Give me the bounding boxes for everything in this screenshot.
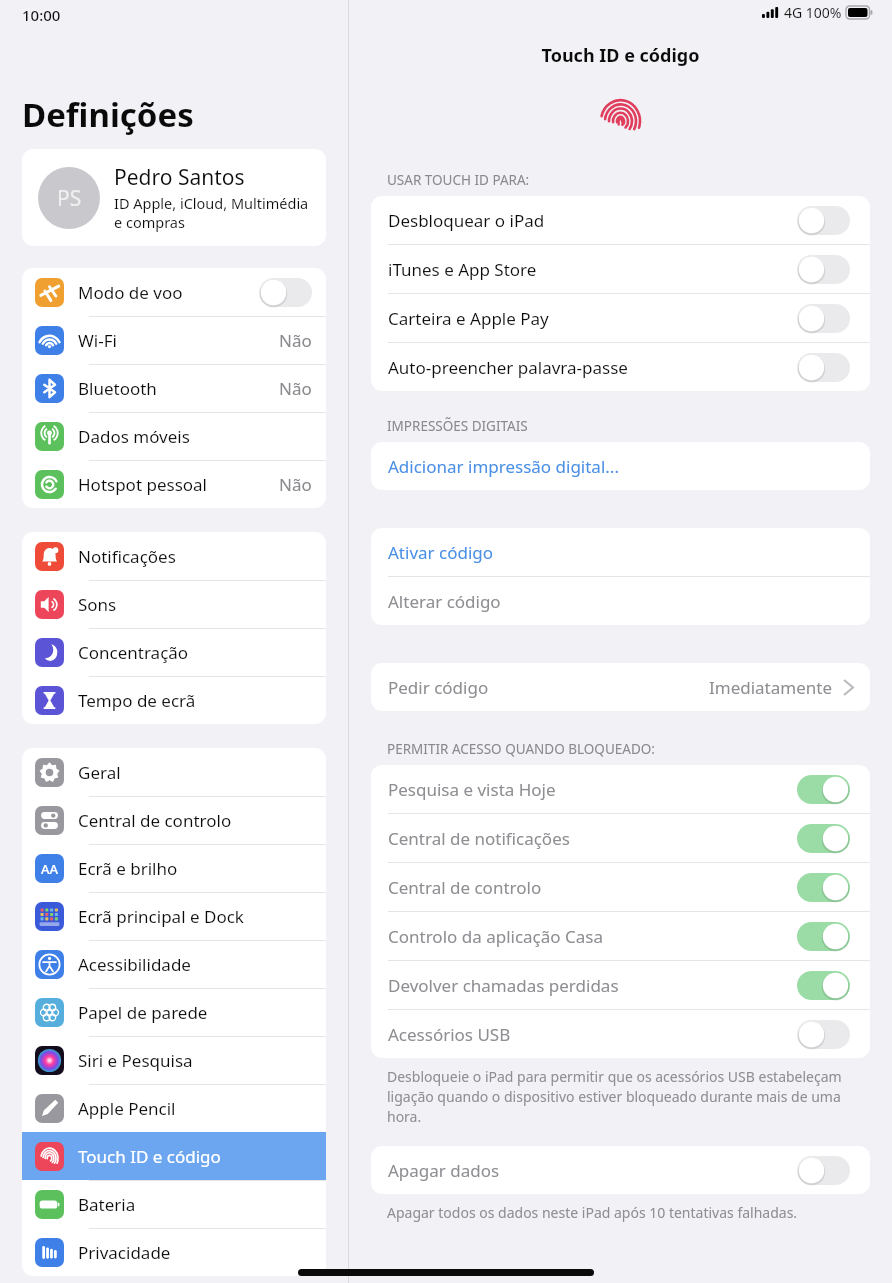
button[interactable]: Ativado <box>797 873 850 902</box>
staticText: IMPRESSÕES DIGITAIS <box>387 417 528 435</box>
button[interactable]: Pesquisa e vista Hoje <box>371 765 870 813</box>
button[interactable]: Bateria <box>22 1180 326 1228</box>
button[interactable]: Ativado <box>797 775 850 804</box>
staticText: Hotspot pessoal <box>78 473 279 496</box>
staticText: Siri e Pesquisa <box>78 1049 312 1072</box>
button[interactable]: Desbloquear o iPad <box>371 196 870 244</box>
button[interactable]: Desativado <box>797 1020 850 1049</box>
button[interactable]: iTunes e App Store <box>371 245 870 293</box>
button[interactable]: PS <box>22 149 326 246</box>
staticText: Modo de voo <box>78 281 259 304</box>
button[interactable]: Ativar código <box>371 528 870 576</box>
staticText: ID Apple, iCloud, Multimédia e compras <box>114 193 309 232</box>
staticText: Não <box>279 377 312 400</box>
button[interactable]: Acessórios USB <box>371 1010 870 1058</box>
staticText: Controlo da aplicação Casa <box>388 925 797 948</box>
staticText: Imediatamente <box>709 676 833 699</box>
staticText: Acessórios USB <box>388 1023 797 1046</box>
staticText: Notificações <box>78 545 312 568</box>
button[interactable]: Acessibilidade <box>22 940 326 988</box>
staticText: Definições <box>22 92 194 137</box>
button[interactable]: Tempo de ecrã <box>22 676 326 724</box>
button[interactable]: Desativado <box>797 206 850 235</box>
staticText: Central de controlo <box>78 809 312 832</box>
button[interactable]: Auto-preencher palavra-passe <box>371 343 870 391</box>
staticText: Geral <box>78 761 312 784</box>
staticText: Adicionar impressão digital... <box>388 455 619 478</box>
staticText: Privacidade <box>78 1241 312 1264</box>
staticText: USAR TOUCH ID PARA: <box>387 171 530 189</box>
button[interactable]: Central de controlo <box>371 863 870 911</box>
button[interactable]: Devolver chamadas perdidas <box>371 961 870 1009</box>
button[interactable]: Desativado <box>797 304 850 333</box>
staticText: Apple Pencil <box>78 1097 312 1120</box>
staticText: Ecrã principal e Dock <box>78 905 312 928</box>
staticText: Apagar todos os dados neste iPad após 10… <box>387 1203 798 1222</box>
staticText: 10:00 <box>22 5 61 25</box>
button[interactable]: Wi-Fi <box>22 316 326 364</box>
button[interactable]: Apagar dados <box>371 1146 870 1194</box>
other: Bateria <box>846 6 873 19</box>
button[interactable]: Carteira e Apple Pay <box>371 294 870 342</box>
button[interactable]: Geral <box>22 748 326 796</box>
staticText: Papel de parede <box>78 1001 312 1024</box>
button[interactable]: Pedir código <box>371 663 870 711</box>
staticText: 4G 100% <box>784 3 842 22</box>
staticText: Desbloqueie o iPad para permitir que os … <box>387 1067 852 1126</box>
button[interactable]: Ativado <box>797 824 850 853</box>
staticText: Acessibilidade <box>78 953 312 976</box>
staticText: Pedir código <box>388 676 709 699</box>
button[interactable]: Sons <box>22 580 326 628</box>
staticText: Ativar código <box>388 541 494 564</box>
button[interactable]: Concentração <box>22 628 326 676</box>
staticText: Sons <box>78 593 312 616</box>
staticText: Touch ID e código <box>78 1145 312 1168</box>
button[interactable]: Modo de voo <box>22 268 326 316</box>
button[interactable]: Ativado <box>797 971 850 1000</box>
button[interactable]: Ativado <box>797 922 850 951</box>
button[interactable]: Desativado <box>259 278 312 307</box>
button[interactable]: AA <box>22 844 326 892</box>
button[interactable]: Papel de parede <box>22 988 326 1036</box>
staticText: AA <box>41 860 59 878</box>
button[interactable]: Central de notificações <box>371 814 870 862</box>
staticText: Bluetooth <box>78 377 279 400</box>
staticText: Não <box>279 329 312 352</box>
staticText: iTunes e App Store <box>388 258 797 281</box>
staticText: PS <box>57 184 82 213</box>
staticText: Alterar código <box>388 590 501 613</box>
button[interactable]: Bluetooth <box>22 364 326 412</box>
staticText: Não <box>279 473 312 496</box>
button[interactable]: Dados móveis <box>22 412 326 460</box>
button[interactable]: Desativado <box>797 1156 850 1185</box>
button[interactable]: Notificações <box>22 532 326 580</box>
staticText: Pedro Santos <box>114 163 245 192</box>
button[interactable]: Apple Pencil <box>22 1084 326 1132</box>
staticText: Ecrã e brilho <box>78 857 312 880</box>
button[interactable]: Hotspot pessoal <box>22 460 326 508</box>
button[interactable]: Desativado <box>797 255 850 284</box>
staticText: Bateria <box>78 1193 312 1216</box>
button[interactable]: Siri e Pesquisa <box>22 1036 326 1084</box>
button[interactable]: Privacidade <box>22 1228 326 1276</box>
staticText: Central de notificações <box>388 827 797 850</box>
staticText: Dados móveis <box>78 425 312 448</box>
staticText: PERMITIR ACESSO QUANDO BLOQUEADO: <box>387 740 655 758</box>
staticText: Carteira e Apple Pay <box>388 307 797 330</box>
button[interactable]: Desativado <box>797 353 850 382</box>
staticText: Central de controlo <box>388 876 797 899</box>
staticText: Apagar dados <box>388 1159 797 1182</box>
staticText: Desbloquear o iPad <box>388 209 797 232</box>
button[interactable]: Adicionar impressão digital... <box>371 442 870 490</box>
other: Sinal <box>762 7 779 18</box>
button[interactable]: Central de controlo <box>22 796 326 844</box>
staticText: Pesquisa e vista Hoje <box>388 778 797 801</box>
button[interactable]: Controlo da aplicação Casa <box>371 912 870 960</box>
staticText: Tempo de ecrã <box>78 689 312 712</box>
button[interactable]: Alterar código <box>371 577 870 625</box>
staticText: Wi-Fi <box>78 329 279 352</box>
button[interactable]: Ecrã principal e Dock <box>22 892 326 940</box>
staticText: Concentração <box>78 641 312 664</box>
staticText: Touch ID e código <box>349 43 892 68</box>
button[interactable]: Touch ID e código <box>22 1132 326 1180</box>
